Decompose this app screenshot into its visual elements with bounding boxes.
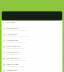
button[interactable]: Reminder deadline [2, 62, 62, 68]
button[interactable]: New comment added [2, 56, 62, 62]
staticText: Someone replied to your note [6, 59, 26, 61]
staticText: Reminder deadline [6, 63, 19, 65]
staticText: New comment added [6, 57, 20, 59]
button[interactable]: Team meeting notes [2, 38, 62, 44]
staticText: Comments from the team now [6, 47, 24, 49]
staticText: Top stories picked for you today [6, 29, 28, 31]
button[interactable]: Weekly team digest [2, 26, 62, 32]
staticText: Your invoice ready [6, 51, 20, 53]
staticText: Weekly team digest [6, 27, 18, 29]
staticText: Newsletter weekly [6, 69, 18, 71]
staticText: Deadline is today at five pm [6, 65, 23, 67]
button[interactable]: Search in mail [2, 20, 62, 26]
staticText: Project status plan [6, 33, 18, 35]
button[interactable]: Project status plan [2, 32, 62, 38]
staticText: Statement this month ready [6, 53, 23, 55]
button[interactable]: Design review ready [2, 44, 62, 50]
button[interactable]: Your invoice ready [2, 50, 62, 56]
staticText: Latest changes ready for review [6, 35, 29, 37]
staticText: Design review ready [6, 45, 21, 47]
button[interactable]: Newsletter weekly [2, 68, 62, 72]
staticText: Agenda attached, read before [6, 41, 27, 43]
staticText: Team meeting notes [6, 39, 19, 41]
staticText: Search in mail [6, 21, 15, 23]
